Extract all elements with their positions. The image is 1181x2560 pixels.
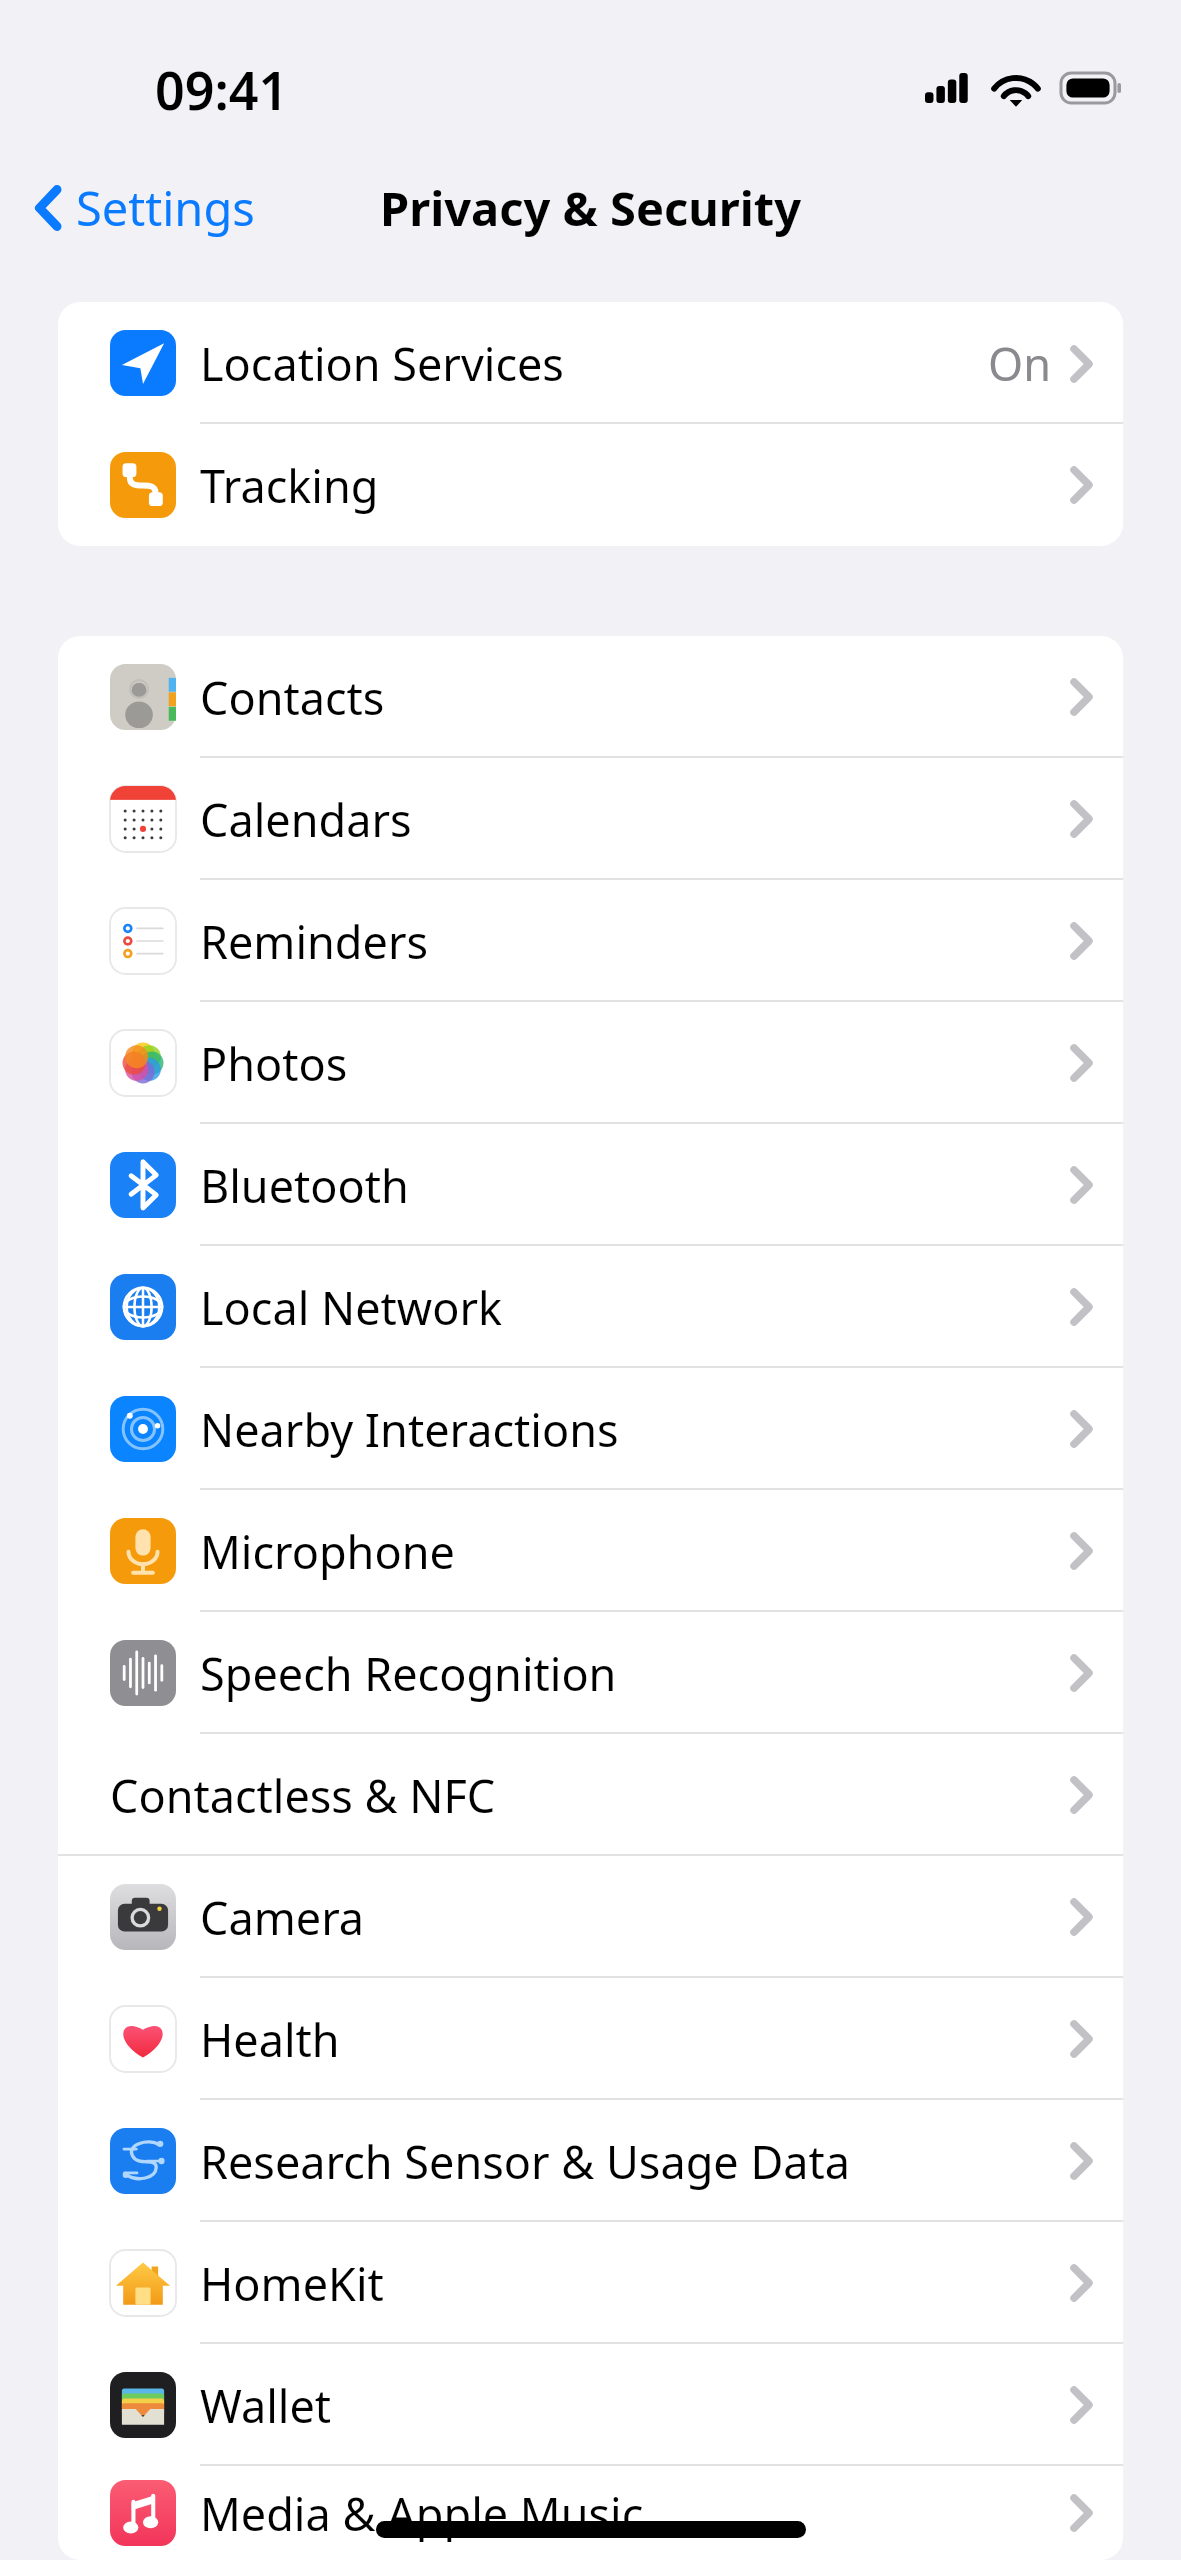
button[interactable]: Tracking xyxy=(58,424,1123,546)
button[interactable]: Microphone xyxy=(58,1490,1123,1612)
button[interactable]: Contactless & NFC xyxy=(58,1734,1123,1856)
button[interactable]: Camera xyxy=(58,1856,1123,1978)
staticText: 09:41 xyxy=(155,54,289,125)
button[interactable]: Reminders xyxy=(58,880,1123,1002)
button[interactable]: Photos xyxy=(58,1002,1123,1124)
staticText: Contactless & NFC xyxy=(110,1765,496,1826)
staticText: Nearby Interactions xyxy=(200,1399,619,1460)
button[interactable]: Contacts xyxy=(58,636,1123,758)
button[interactable]: Wallet xyxy=(58,2344,1123,2466)
staticText: Location Services xyxy=(200,333,564,394)
staticText: Calendars xyxy=(200,789,412,850)
button[interactable]: Speech Recognition xyxy=(58,1612,1123,1734)
button[interactable]: Bluetooth xyxy=(58,1124,1123,1246)
staticText: Photos xyxy=(200,1033,348,1094)
staticText: HomeKit xyxy=(200,2253,384,2314)
staticText: Camera xyxy=(200,1887,365,1948)
button[interactable]: Calendars xyxy=(58,758,1123,880)
staticText: Bluetooth xyxy=(200,1155,409,1216)
staticText: Tracking xyxy=(200,455,379,516)
staticText: Settings xyxy=(76,176,255,240)
staticText: Contacts xyxy=(200,667,385,728)
staticText: Wallet xyxy=(200,2375,332,2436)
button[interactable]: Local Network xyxy=(58,1246,1123,1368)
staticText: Media & Apple Music xyxy=(200,2483,644,2544)
button[interactable]: Research Sensor & Usage Data xyxy=(58,2100,1123,2222)
staticText: Research Sensor & Usage Data xyxy=(200,2131,850,2192)
button[interactable]: Media & Apple Music xyxy=(58,2466,1123,2560)
button[interactable]: Nearby Interactions xyxy=(58,1368,1123,1490)
staticText: Microphone xyxy=(200,1521,455,1582)
button[interactable]: Location Services xyxy=(58,302,1123,424)
staticText: On xyxy=(988,333,1051,394)
button[interactable]: HomeKit xyxy=(58,2222,1123,2344)
button[interactable]: Health xyxy=(58,1978,1123,2100)
button[interactable]: Settings xyxy=(22,166,269,250)
staticText: Local Network xyxy=(200,1277,502,1338)
staticText: Reminders xyxy=(200,911,429,972)
staticText: Speech Recognition xyxy=(200,1643,617,1704)
staticText: Privacy & Security xyxy=(380,176,802,240)
staticText: Health xyxy=(200,2009,340,2070)
